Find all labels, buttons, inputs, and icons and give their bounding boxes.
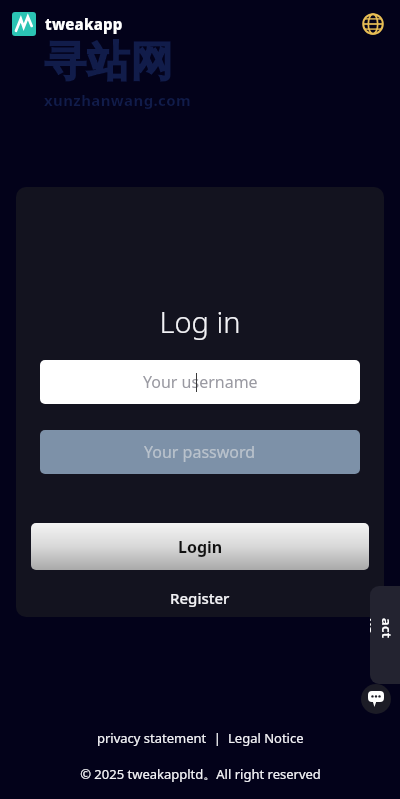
- staticText: © 2025 tweakappltd。All right reserved: [80, 765, 321, 783]
- button[interactable]: Your password: [40, 430, 360, 474]
- button[interactable]: Contact us: [370, 586, 400, 684]
- staticText: Your password: [144, 441, 256, 463]
- staticText: tweakapp: [45, 14, 123, 34]
- staticText: Register: [170, 588, 230, 608]
- button[interactable]: Chat: [361, 684, 391, 714]
- button[interactable]: Language: [358, 9, 388, 39]
- staticText: Log in: [16, 302, 384, 341]
- button[interactable]: Register: [16, 585, 384, 611]
- staticText: |: [207, 729, 228, 747]
- button[interactable]: tweakapp: [12, 12, 123, 36]
- staticText: Legal Notice: [228, 729, 304, 747]
- staticText: Your username: [143, 371, 258, 393]
- button[interactable]: Your username: [40, 360, 360, 404]
- staticText: xunzhanwang.com: [44, 90, 192, 110]
- button[interactable]: Login: [31, 523, 369, 570]
- staticText: privacy statement: [97, 729, 207, 747]
- staticText: 寻站网: [44, 36, 173, 89]
- button[interactable]: privacy statement: [97, 729, 207, 747]
- staticText: Login: [178, 536, 223, 558]
- staticText: Contact us: [370, 618, 400, 652]
- button[interactable]: Legal Notice: [228, 729, 304, 747]
